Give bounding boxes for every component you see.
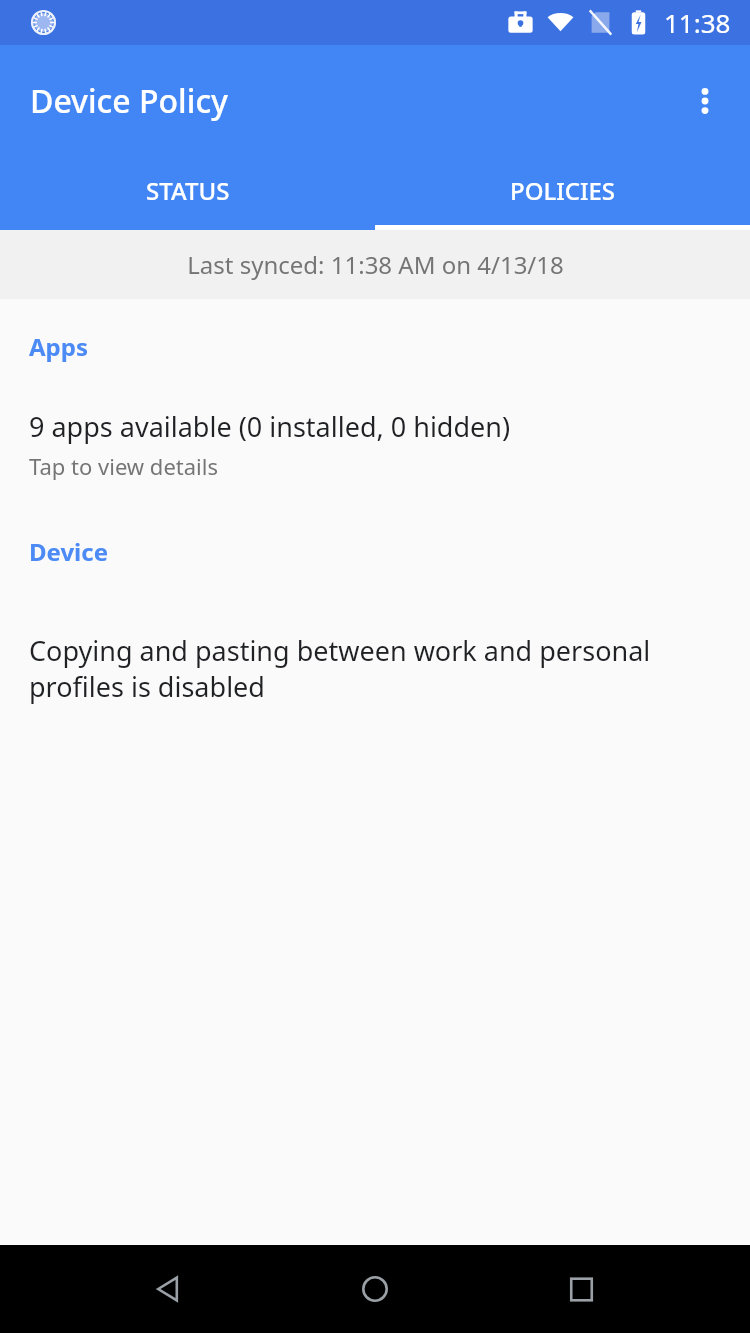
- staticText: 9 apps available (0 installed, 0 hidden): [29, 408, 511, 445]
- button[interactable]: Copying and pasting between work and per…: [0, 630, 750, 707]
- staticText: Apps: [29, 330, 88, 363]
- staticText: STATUS: [146, 174, 230, 207]
- staticText: Copying and pasting between work and per…: [29, 632, 721, 705]
- button[interactable]: STATUS: [0, 157, 375, 230]
- staticText: 11:38: [664, 5, 731, 40]
- button[interactable]: More options: [677, 73, 733, 129]
- staticText: Last synced: 11:38 AM on 4/13/18: [187, 248, 564, 281]
- button[interactable]: 9 apps available (0 installed, 0 hidden): [0, 406, 750, 483]
- staticText: Device: [29, 535, 109, 568]
- staticText: POLICIES: [510, 174, 616, 207]
- button[interactable]: Back: [132, 1252, 206, 1326]
- button[interactable]: Home: [338, 1252, 412, 1326]
- button[interactable]: POLICIES: [375, 157, 750, 230]
- staticText: Tap to view details: [29, 451, 218, 481]
- button[interactable]: Recent apps: [544, 1252, 618, 1326]
- staticText: Device Policy: [30, 79, 228, 123]
